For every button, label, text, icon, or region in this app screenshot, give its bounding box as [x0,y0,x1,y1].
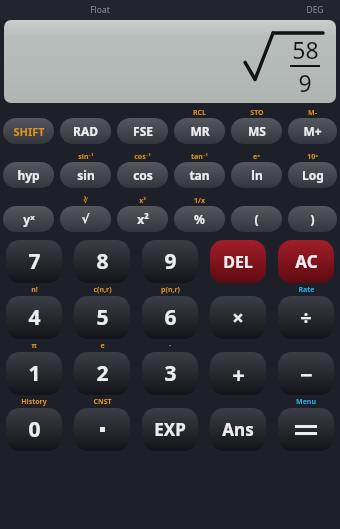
staticText: n! [31,285,38,295]
staticText: MS [248,123,266,139]
button[interactable]: DEL [210,240,266,283]
button[interactable]: % [174,206,225,232]
button[interactable]: Decimal point [74,408,130,451]
button[interactable]: 5 [74,296,130,339]
button[interactable]: M+ [288,118,337,144]
staticText: hyp [17,167,40,183]
button[interactable]: 3 [142,352,198,395]
button[interactable]: 4 [6,296,62,339]
staticText: ln [251,167,263,183]
staticText: 4 [28,303,41,332]
staticText: ( [254,211,259,227]
staticText: e [100,341,105,351]
staticText: SHIFT [13,124,45,139]
button[interactable]: FSE [117,118,168,144]
staticText: 9 [298,67,312,98]
button[interactable]: ) [288,206,337,232]
button[interactable]: Equals [278,408,334,451]
staticText: 7 [28,247,41,276]
button[interactable]: AC [278,240,334,283]
staticText: ∛ [83,197,88,205]
staticText: 1 [28,359,41,388]
staticText: History [21,397,47,407]
button[interactable]: 7 [6,240,62,283]
staticText: π [31,341,37,351]
button[interactable]: MS [231,118,282,144]
staticText: √ [81,212,90,226]
staticText: Float [90,4,110,16]
staticText: 10ˣ [307,152,318,162]
button[interactable]: hyp [3,162,54,188]
button[interactable]: ln [231,162,282,188]
staticText: + [232,359,245,389]
button[interactable]: Multiply [210,296,266,339]
staticText: % [194,211,205,227]
staticText: 9 [164,247,177,276]
staticText: 58 [292,34,319,65]
staticText: − [300,359,313,389]
button[interactable]: 6 [142,296,198,339]
staticText: M- [308,108,317,118]
staticText: 8 [96,247,109,276]
button[interactable]: MR [174,118,225,144]
button[interactable]: x² [117,206,168,232]
button[interactable]: sin [60,162,111,188]
staticText: 5 [96,303,109,332]
staticText: DEL [223,251,253,273]
staticText: ÷ [300,304,312,331]
button[interactable]: cos [117,162,168,188]
staticText: EXP [154,418,186,441]
staticText: tan [189,167,210,183]
staticText: p(n,r) [161,285,180,295]
button[interactable]: EXP [142,408,198,451]
button[interactable]: Divide [278,296,334,339]
button[interactable]: 0 [6,408,62,451]
staticText: ) [310,211,315,227]
staticText: Rate [298,285,315,295]
staticText: FSE [133,123,153,139]
staticText: Menu [296,397,316,407]
staticText: x³ [139,196,146,206]
staticText: tan⁻¹ [191,152,208,162]
staticText: cos⁻¹ [134,152,151,162]
staticText: M+ [303,123,322,139]
staticText: 2 [96,359,109,388]
staticText: CNST [93,397,112,407]
staticText: DEG [306,4,324,16]
staticText: RCL [193,108,206,118]
staticText: eˣ [253,152,260,162]
staticText: MR [190,123,210,139]
button[interactable]: 9 [142,240,198,283]
button[interactable]: 8 [74,240,130,283]
staticText: yˣ [23,211,35,227]
button[interactable]: Plus [210,352,266,395]
staticText: AC [295,250,318,273]
staticText: Ans [222,418,254,441]
staticText: cos [133,167,153,183]
button[interactable]: ( [231,206,282,232]
staticText: STO [250,108,264,118]
staticText: 1/x [194,196,205,206]
button[interactable]: 2 [74,352,130,395]
staticText: c(n,r) [93,285,112,295]
staticText: 0 [28,415,41,444]
button[interactable]: tan [174,162,225,188]
staticText: 6 [164,303,177,332]
staticText: × [232,304,244,331]
staticText: sin [77,167,95,183]
button[interactable]: SHIFT [3,118,54,144]
staticText: 3 [164,359,177,388]
staticText: sin⁻¹ [78,152,94,162]
staticText: RAD [73,123,98,139]
button[interactable]: √ [60,206,111,232]
button[interactable]: Ans [210,408,266,451]
button[interactable]: Minus [278,352,334,395]
button[interactable]: RAD [60,118,111,144]
button[interactable]: Log [288,162,337,188]
staticText: · [169,341,171,351]
staticText: x² [137,211,149,227]
staticText: Log [302,167,324,183]
button[interactable]: yˣ [3,206,54,232]
button[interactable]: 1 [6,352,62,395]
